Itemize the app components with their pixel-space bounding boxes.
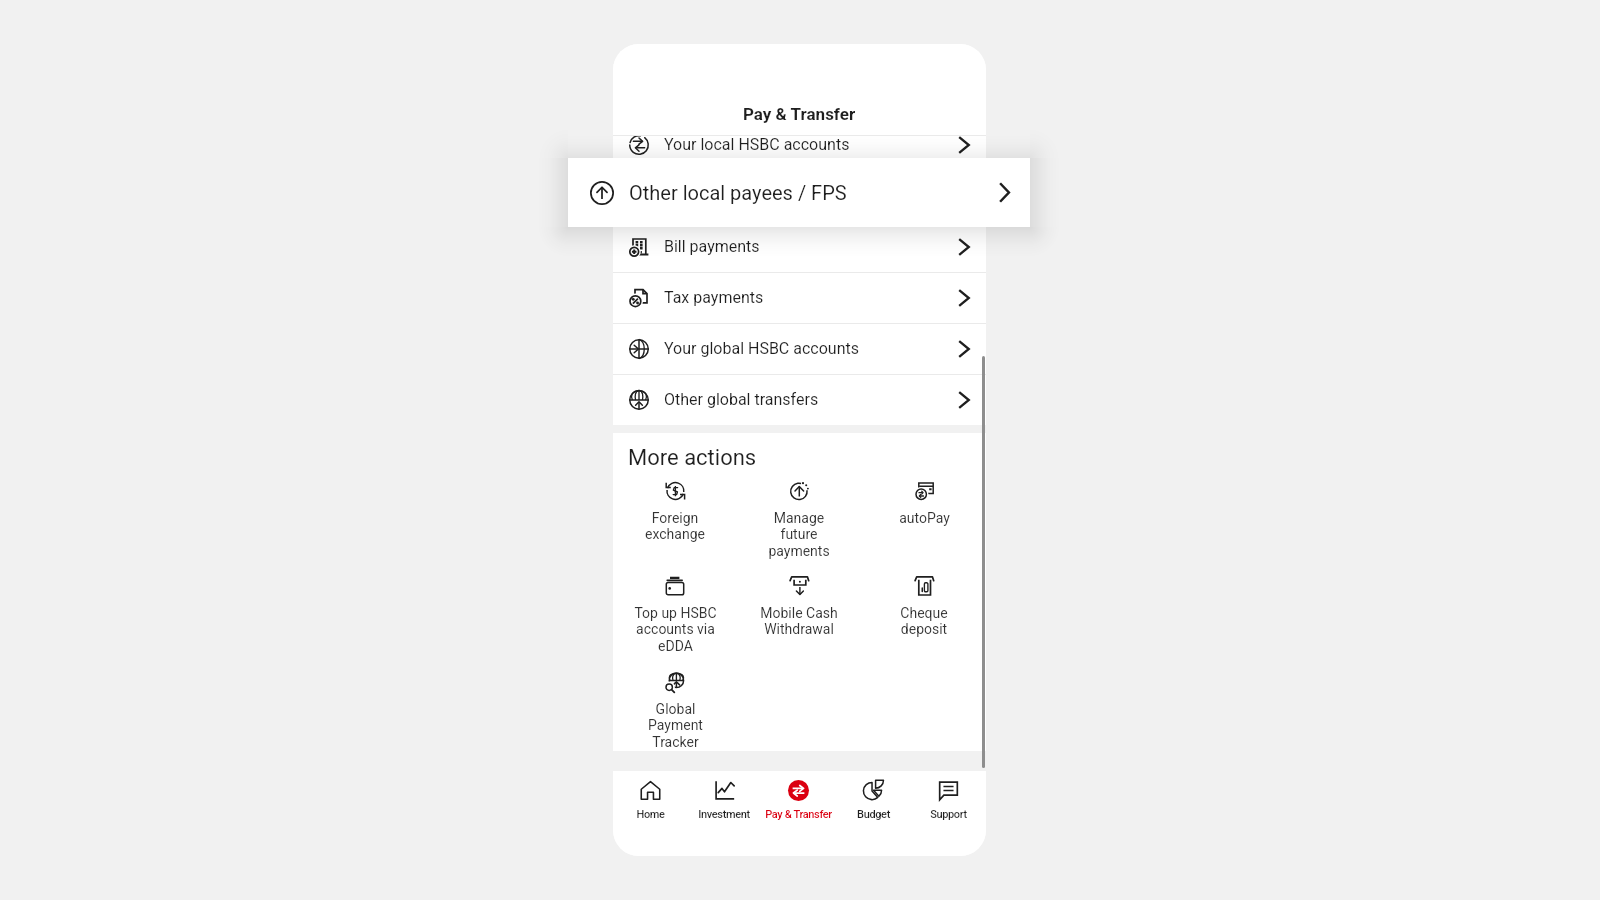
staticText: Mobile Cash Withdrawal: [760, 605, 838, 638]
staticText: Tax payments: [664, 288, 764, 307]
button[interactable]: Other local payees / FPS: [613, 170, 986, 221]
button[interactable]: Other global transfers: [613, 374, 986, 425]
staticText: Foreign exchange: [645, 510, 705, 543]
button[interactable]: Cheque deposit: [862, 576, 986, 638]
staticText: Your local HSBC accounts: [664, 136, 850, 154]
staticText: Global Payment Tracker: [648, 701, 703, 751]
staticText: Pay & Transfer: [765, 808, 832, 821]
button[interactable]: Foreign exchange: [613, 481, 737, 543]
staticText: More actions: [628, 445, 757, 471]
staticText: Your global HSBC accounts: [664, 339, 859, 358]
staticText: Home: [636, 808, 665, 821]
button[interactable]: Your local HSBC accounts: [613, 136, 986, 170]
staticText: Other global transfers: [664, 390, 819, 409]
button[interactable]: Top up HSBC accounts via eDDA: [613, 576, 737, 655]
staticText: Cheque deposit: [900, 605, 948, 638]
button[interactable]: Bill payments: [613, 221, 986, 272]
button[interactable]: Manage future payments: [737, 481, 861, 560]
staticText: Investment: [698, 808, 750, 821]
staticText: Pay & Transfer: [743, 104, 856, 124]
button[interactable]: Home: [613, 771, 687, 856]
staticText: Other local payees / FPS: [664, 186, 839, 205]
button[interactable]: Support: [911, 771, 986, 856]
staticText: Budget: [857, 808, 890, 821]
staticText: Manage future payments: [768, 510, 830, 560]
button[interactable]: Your global HSBC accounts: [613, 323, 986, 374]
button[interactable]: Pay & Transfer: [761, 771, 836, 856]
staticText: autoPay: [899, 510, 950, 526]
staticText: Support: [930, 808, 967, 821]
button[interactable]: Other local payees / FPS: [568, 158, 1030, 227]
button[interactable]: Mobile Cash Withdrawal: [737, 576, 861, 638]
button[interactable]: Tax payments: [613, 272, 986, 323]
button[interactable]: Budget: [836, 771, 911, 856]
staticText: Bill payments: [664, 237, 760, 256]
staticText: Top up HSBC accounts via eDDA: [634, 605, 717, 655]
button[interactable]: Global Payment Tracker: [613, 672, 737, 751]
staticText: Other local payees / FPS: [629, 181, 847, 204]
button[interactable]: autoPay: [862, 481, 986, 526]
button[interactable]: Investment: [687, 771, 761, 856]
